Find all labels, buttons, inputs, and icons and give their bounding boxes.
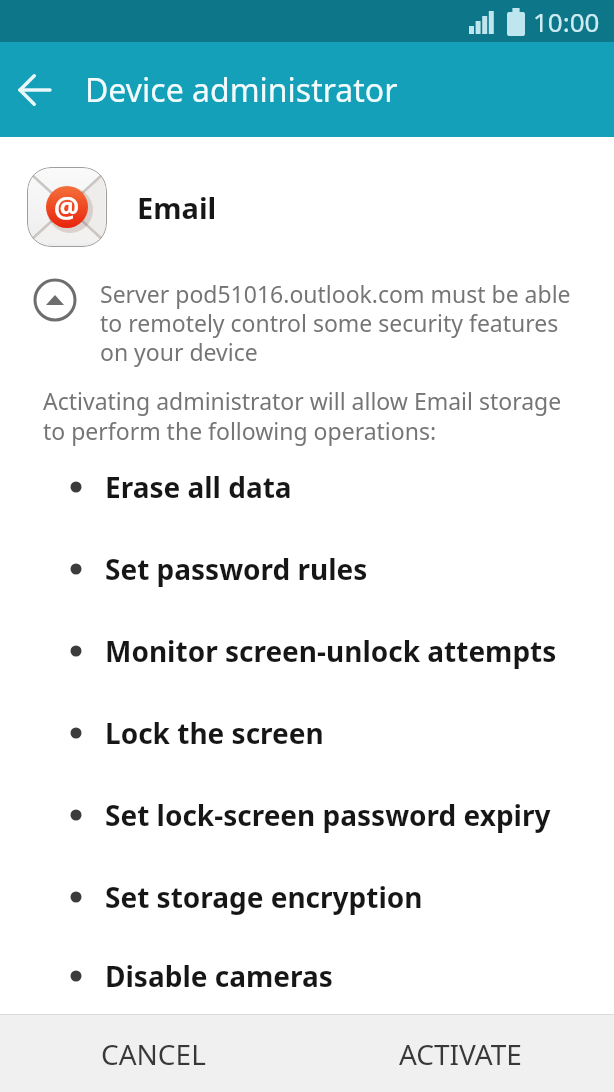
staticText: Set password rules: [105, 550, 368, 588]
button[interactable]: CANCEL: [0, 1015, 307, 1092]
staticText: Set lock-screen password expiry: [105, 796, 551, 834]
staticText: Server pod51016.outlook.com must be able…: [100, 278, 571, 368]
staticText: Erase all data: [105, 468, 292, 506]
staticText: 10:00: [533, 4, 600, 39]
staticText: CANCEL: [101, 1035, 206, 1073]
button[interactable]: [33, 278, 77, 322]
staticText: @: [54, 188, 80, 226]
staticText: Set storage encryption: [105, 878, 423, 916]
staticText: Device administrator: [85, 68, 398, 112]
staticText: Monitor screen-unlock attempts: [105, 632, 557, 670]
button[interactable]: [0, 42, 70, 137]
staticText: Activating administrator will allow Emai…: [43, 385, 562, 446]
staticText: Email: [137, 188, 217, 227]
staticText: Lock the screen: [105, 714, 324, 752]
staticText: ACTIVATE: [399, 1035, 522, 1073]
staticText: Disable cameras: [105, 957, 333, 995]
button[interactable]: ACTIVATE: [307, 1015, 614, 1092]
